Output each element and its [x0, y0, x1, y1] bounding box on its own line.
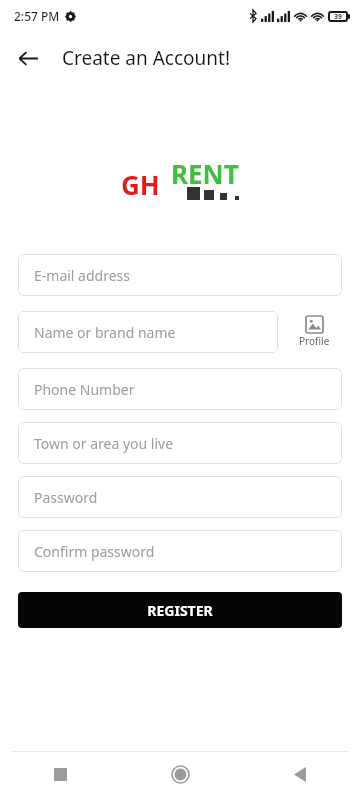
button[interactable]: Confirm password [18, 530, 342, 572]
button[interactable]: Profile picture [286, 308, 342, 356]
staticText: Create an Account! [62, 45, 231, 71]
staticText: E-mail address [34, 266, 130, 285]
staticText: Password [34, 488, 98, 507]
button[interactable]: Password [18, 476, 342, 518]
button[interactable]: Back [240, 752, 360, 796]
button[interactable]: Back [6, 36, 50, 80]
button[interactable]: Name or brand name [18, 311, 278, 353]
staticText: RENT [171, 156, 239, 191]
button[interactable]: Recents [0, 752, 120, 796]
staticText: GH [121, 167, 160, 202]
staticText: 2:57 PM [14, 8, 60, 24]
button[interactable]: REGISTER [18, 592, 342, 628]
staticText: Confirm password [34, 542, 155, 561]
staticText: REGISTER [147, 601, 213, 620]
staticText: Phone Number [34, 380, 135, 399]
button[interactable]: Phone Number [18, 368, 342, 410]
staticText: 39 [334, 12, 343, 22]
button[interactable]: Town or area you live [18, 422, 342, 464]
button[interactable]: E-mail address [18, 254, 342, 296]
staticText: Name or brand name [34, 323, 176, 342]
button[interactable]: Home [120, 752, 240, 796]
staticText: Profile [299, 334, 330, 348]
staticText: Town or area you live [34, 434, 174, 453]
